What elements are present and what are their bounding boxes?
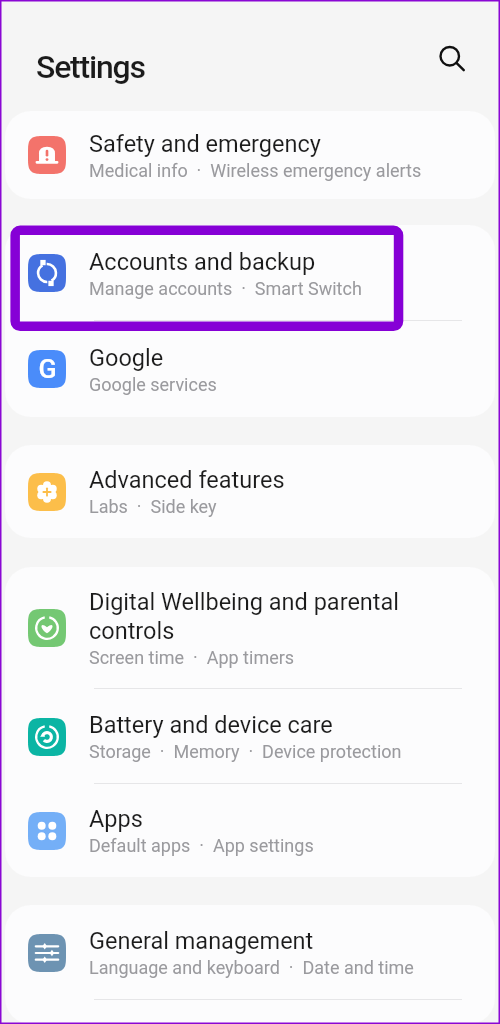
staticText: Labs · Side key (89, 496, 217, 517)
button[interactable]: Accounts and backup (5, 225, 495, 321)
button[interactable]: Safety and emergency (5, 111, 495, 199)
button[interactable]: Apps (5, 784, 495, 877)
staticText: Language and keyboard · Date and time (89, 957, 414, 978)
staticText: Google services (89, 374, 217, 395)
button[interactable]: Advanced features (5, 445, 495, 538)
staticText: Accounts and backup (89, 248, 316, 276)
staticText: G (38, 353, 57, 384)
button[interactable]: Digital Wellbeing and parental controls (5, 567, 495, 689)
staticText: Battery and device care (89, 711, 333, 739)
button[interactable]: Battery and device care (5, 689, 495, 784)
staticText: Default apps · App settings (89, 835, 314, 856)
staticText: Storage · Memory · Device protection (89, 741, 402, 762)
button[interactable]: Search (428, 35, 476, 83)
staticText: Medical info · Wireless emergency alerts (89, 160, 422, 181)
staticText: General management (89, 927, 314, 955)
staticText: Settings (36, 48, 145, 86)
staticText: Google (89, 344, 164, 372)
staticText: Advanced features (89, 466, 285, 494)
button[interactable]: G (5, 321, 495, 417)
staticText: Apps (89, 805, 143, 833)
staticText: Manage accounts · Smart Switch (89, 278, 362, 299)
staticText: Screen time · App timers (89, 647, 295, 668)
staticText: Digital Wellbeing and parental controls (89, 588, 429, 645)
button[interactable]: General management (5, 905, 495, 1000)
staticText: Safety and emergency (89, 130, 321, 158)
